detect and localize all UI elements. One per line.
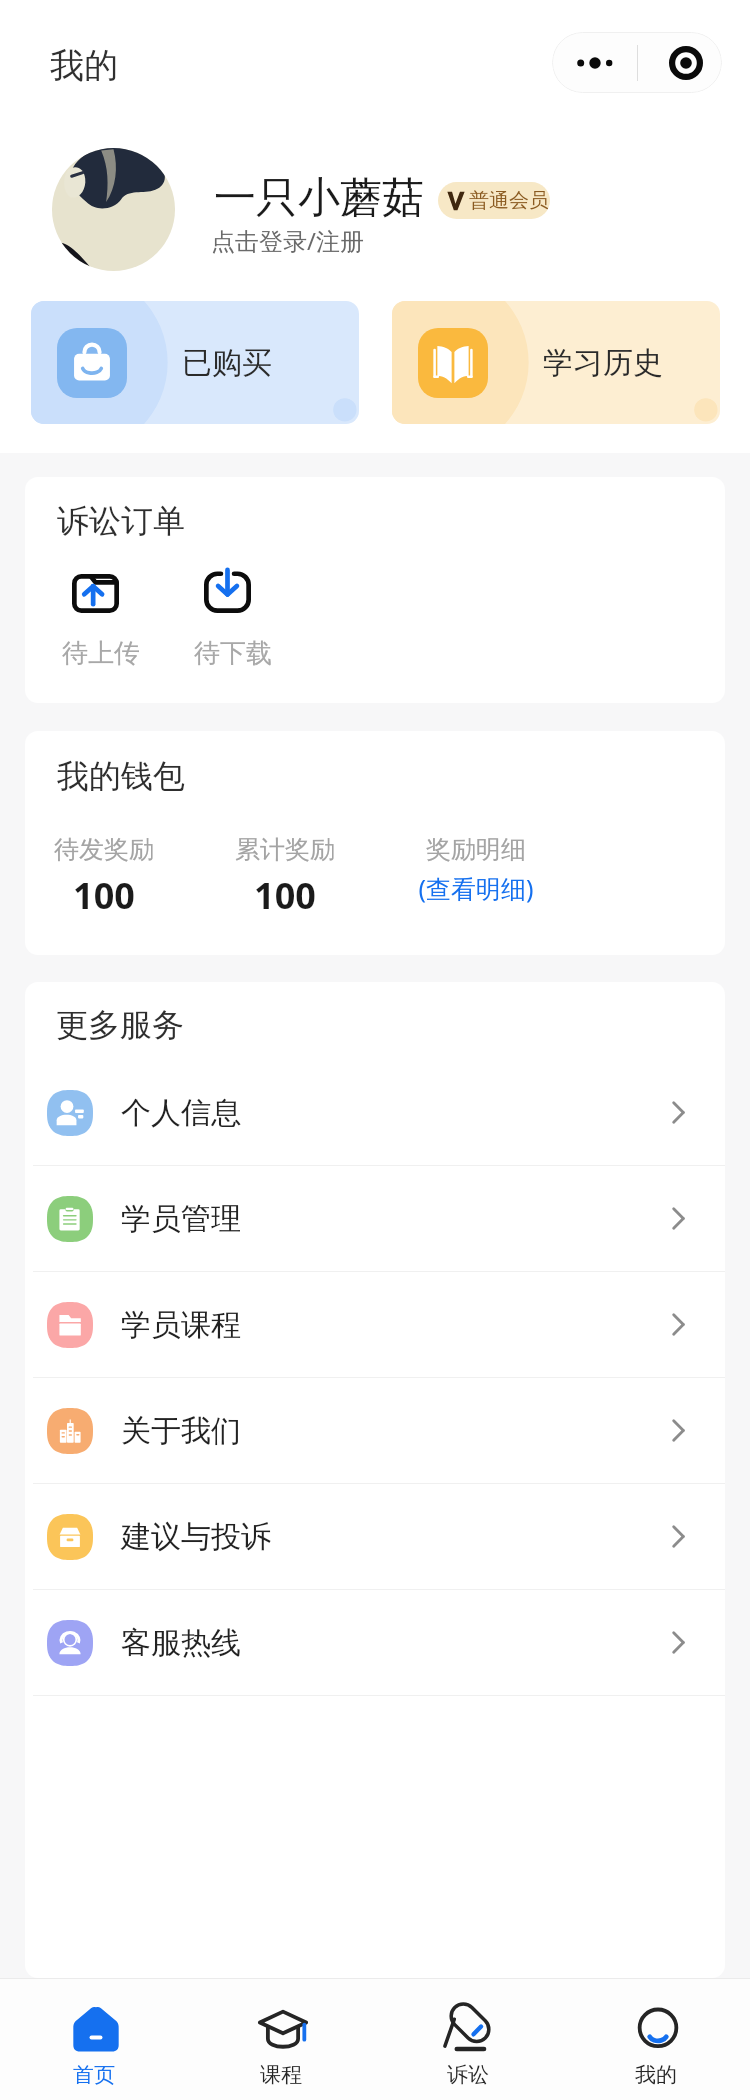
button[interactable]: 个人信息: [25, 1060, 725, 1165]
button[interactable]: 待上传: [50, 569, 140, 670]
button[interactable]: 首页: [0, 1979, 187, 2100]
button[interactable]: 待发奖励: [29, 834, 179, 920]
staticText: 我的: [635, 2062, 677, 2088]
staticText: 关于我们: [121, 1412, 241, 1450]
staticText: 学习历史: [543, 344, 663, 382]
button[interactable]: 一只小蘑菇: [0, 148, 750, 271]
staticText: 学员管理: [121, 1200, 241, 1238]
staticText: 奖励明细: [401, 834, 551, 865]
staticText: (查看明细): [401, 871, 551, 905]
staticText: 100: [210, 871, 360, 920]
staticText: 建议与投诉: [121, 1518, 271, 1556]
button[interactable]: 待下载: [182, 569, 272, 670]
staticText: 我的: [50, 44, 118, 87]
button[interactable]: 关于我们: [25, 1378, 725, 1483]
button[interactable]: 学员管理: [25, 1166, 725, 1271]
staticText: 一只小蘑菇: [214, 172, 424, 225]
button[interactable]: More options: [552, 32, 637, 93]
staticText: 点击登录/注册: [211, 224, 364, 257]
staticText: 待发奖励: [29, 834, 179, 865]
button[interactable]: 我的: [562, 1979, 750, 2100]
staticText: 首页: [73, 2062, 115, 2088]
staticText: 普通会员: [469, 188, 549, 213]
button[interactable]: 客服热线: [25, 1590, 725, 1695]
button[interactable]: 建议与投诉: [25, 1484, 725, 1589]
button[interactable]: 学习历史: [392, 301, 720, 424]
button[interactable]: 诉讼: [374, 1979, 562, 2100]
staticText: 100: [29, 871, 179, 920]
staticText: 诉讼: [447, 2062, 489, 2088]
button[interactable]: 已购买: [31, 301, 359, 424]
staticText: 我的钱包: [57, 756, 185, 796]
button[interactable]: Mini program menu: [638, 32, 722, 93]
staticText: 已购买: [182, 344, 272, 382]
button[interactable]: 学员课程: [25, 1272, 725, 1377]
staticText: 诉讼订单: [57, 501, 185, 541]
staticText: 学员课程: [121, 1306, 241, 1344]
staticText: 个人信息: [121, 1094, 241, 1132]
staticText: 更多服务: [56, 1005, 184, 1045]
button[interactable]: 奖励明细: [401, 834, 551, 905]
staticText: 客服热线: [121, 1624, 241, 1662]
button[interactable]: 累计奖励: [210, 834, 360, 920]
button[interactable]: 课程: [187, 1979, 374, 2100]
staticText: 课程: [260, 2062, 302, 2088]
staticText: 待下载: [188, 637, 278, 670]
staticText: 累计奖励: [210, 834, 360, 865]
staticText: 待上传: [56, 637, 146, 670]
